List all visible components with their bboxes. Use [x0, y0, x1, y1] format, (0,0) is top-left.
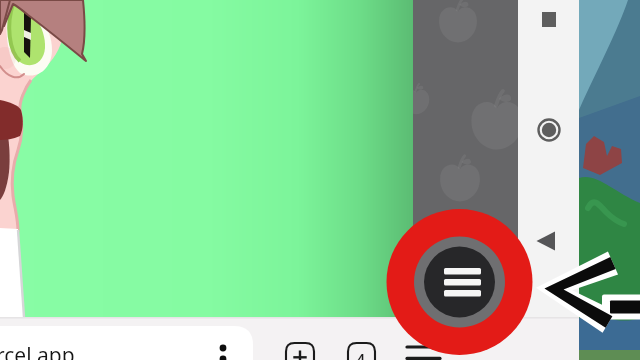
- button[interactable]: [0, 0, 640, 360]
